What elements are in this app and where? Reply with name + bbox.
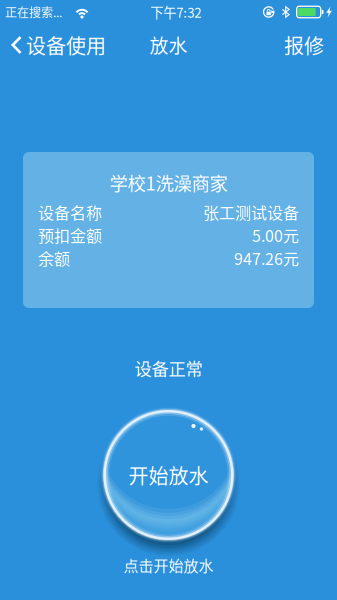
staticText: 设备名称 [38,200,102,224]
staticText: 报修 [284,30,324,59]
button[interactable]: 设备使用 [3,24,114,65]
staticText: 张工测试设备 [203,200,299,224]
staticText: 设备正常 [134,355,202,381]
staticText: 余额 [38,246,70,270]
staticText: 点击开始放水 [123,554,213,576]
staticText: 预扣金额 [38,223,102,247]
staticText: 正在搜索... [5,3,62,21]
staticText: 设备使用 [26,30,106,59]
button[interactable]: 报修 [274,24,334,65]
staticText: 5.00元 [252,223,299,247]
button[interactable]: 开始放水 [95,397,241,553]
staticText: 学校1洗澡商家 [109,169,227,196]
staticText: 947.26元 [234,246,299,270]
staticText: 开始放水 [128,460,208,489]
staticText: 放水 [149,31,187,59]
staticText: 下午7:32 [150,2,201,22]
